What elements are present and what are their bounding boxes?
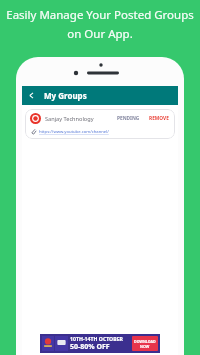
button[interactable]: Sanjay Technology: [25, 109, 175, 139]
staticText: 50-80% OFF: [70, 342, 110, 352]
staticText: PENDING: [117, 115, 140, 122]
staticText: Easily Manage Your Posted Groups: [6, 7, 194, 23]
button[interactable]: Attached link: [30, 128, 170, 135]
other: Attached link: [30, 128, 37, 135]
staticText: https://www.youtube.com/channel/UC0jBErZ…: [39, 129, 170, 135]
staticText: DOWNLOAD: [134, 339, 156, 344]
staticText: Sanjay Technology: [45, 115, 94, 123]
staticText: 10TH-14TH OCTOBER: [70, 335, 123, 342]
button[interactable]: PENDING: [116, 114, 141, 123]
staticText: My Groups: [44, 90, 87, 101]
staticText: NOW: [140, 344, 150, 349]
staticText: REMOVE: [149, 115, 169, 122]
button[interactable]: DOWNLOAD: [132, 336, 158, 351]
button[interactable]: 10TH-14TH OCTOBER: [40, 334, 160, 353]
button[interactable]: REMOVE: [148, 114, 170, 123]
staticText: on Our App.: [67, 26, 133, 42]
button[interactable]: Back: [22, 86, 41, 105]
